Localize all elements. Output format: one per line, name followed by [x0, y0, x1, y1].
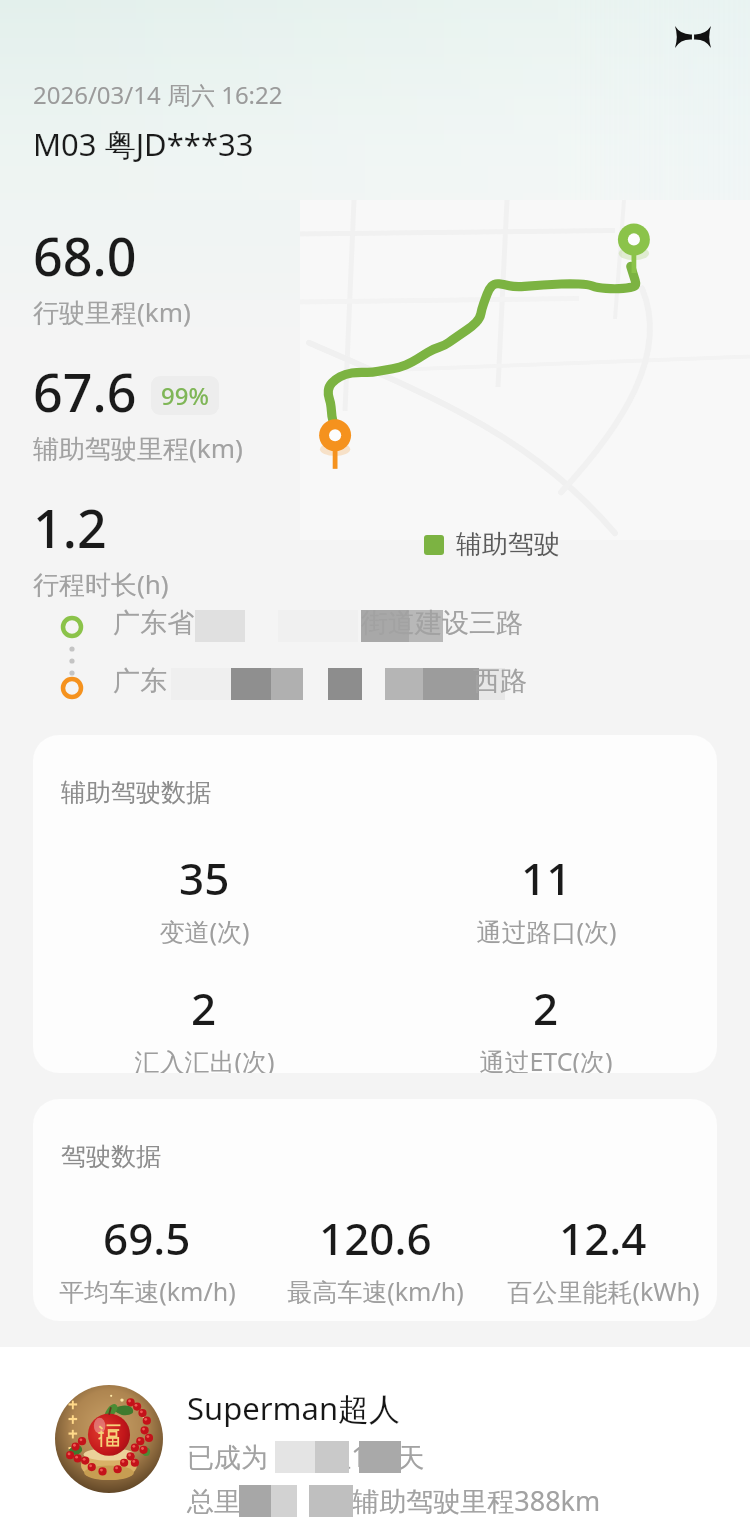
staticText: 69.5	[103, 1208, 191, 1268]
staticText: 已成为 主150天	[187, 1438, 425, 1475]
staticText: 驾驶数据	[61, 1141, 161, 1172]
button[interactable]: 驾驶数据	[33, 1099, 717, 1321]
staticText: 平均车速(km/h)	[59, 1274, 236, 1308]
staticText: 西路	[473, 664, 527, 698]
staticText: 35	[179, 848, 230, 908]
staticText: 行驶里程(km)	[33, 294, 191, 330]
staticText: 1.2	[33, 492, 107, 563]
staticText: 辅助驾驶里程(km)	[33, 430, 243, 466]
staticText: 行程时长(h)	[33, 566, 169, 600]
staticText: 通过路口(次)	[476, 914, 617, 948]
staticText: M03 粤JD***33	[33, 123, 254, 165]
staticText: 67.6	[33, 356, 137, 427]
staticText: 广东省	[113, 606, 194, 640]
staticText: 广东	[113, 664, 167, 698]
staticText: 120.6	[319, 1208, 432, 1268]
staticText: 2026/03/14 周六 16:22	[33, 78, 283, 111]
staticText: 2	[191, 978, 217, 1038]
staticText: 辅助驾驶数据	[61, 777, 211, 808]
staticText: 99%	[161, 379, 209, 412]
staticText: 街道建设三路	[361, 606, 523, 640]
staticText: 汇入汇出(次)	[134, 1044, 275, 1073]
staticText: 辅助驾驶	[456, 528, 560, 561]
staticText: 12.4	[559, 1208, 647, 1268]
staticText: 总里 ，辅助驾驶里程388km	[187, 1482, 601, 1519]
staticText: 变道(次)	[159, 914, 250, 948]
staticText: 通过ETC(次)	[479, 1044, 613, 1073]
staticText: 百公里能耗(kWh)	[507, 1274, 700, 1308]
staticText: 11	[521, 848, 572, 908]
staticText: Superman超人	[187, 1387, 401, 1429]
button[interactable]: Superman超人	[0, 1347, 750, 1536]
button[interactable]: Close	[664, 8, 722, 66]
staticText: 2	[533, 978, 559, 1038]
staticText: 最高车速(km/h)	[287, 1274, 464, 1308]
staticText: 68.0	[33, 220, 137, 291]
button[interactable]: 辅助驾驶数据	[33, 735, 717, 1073]
